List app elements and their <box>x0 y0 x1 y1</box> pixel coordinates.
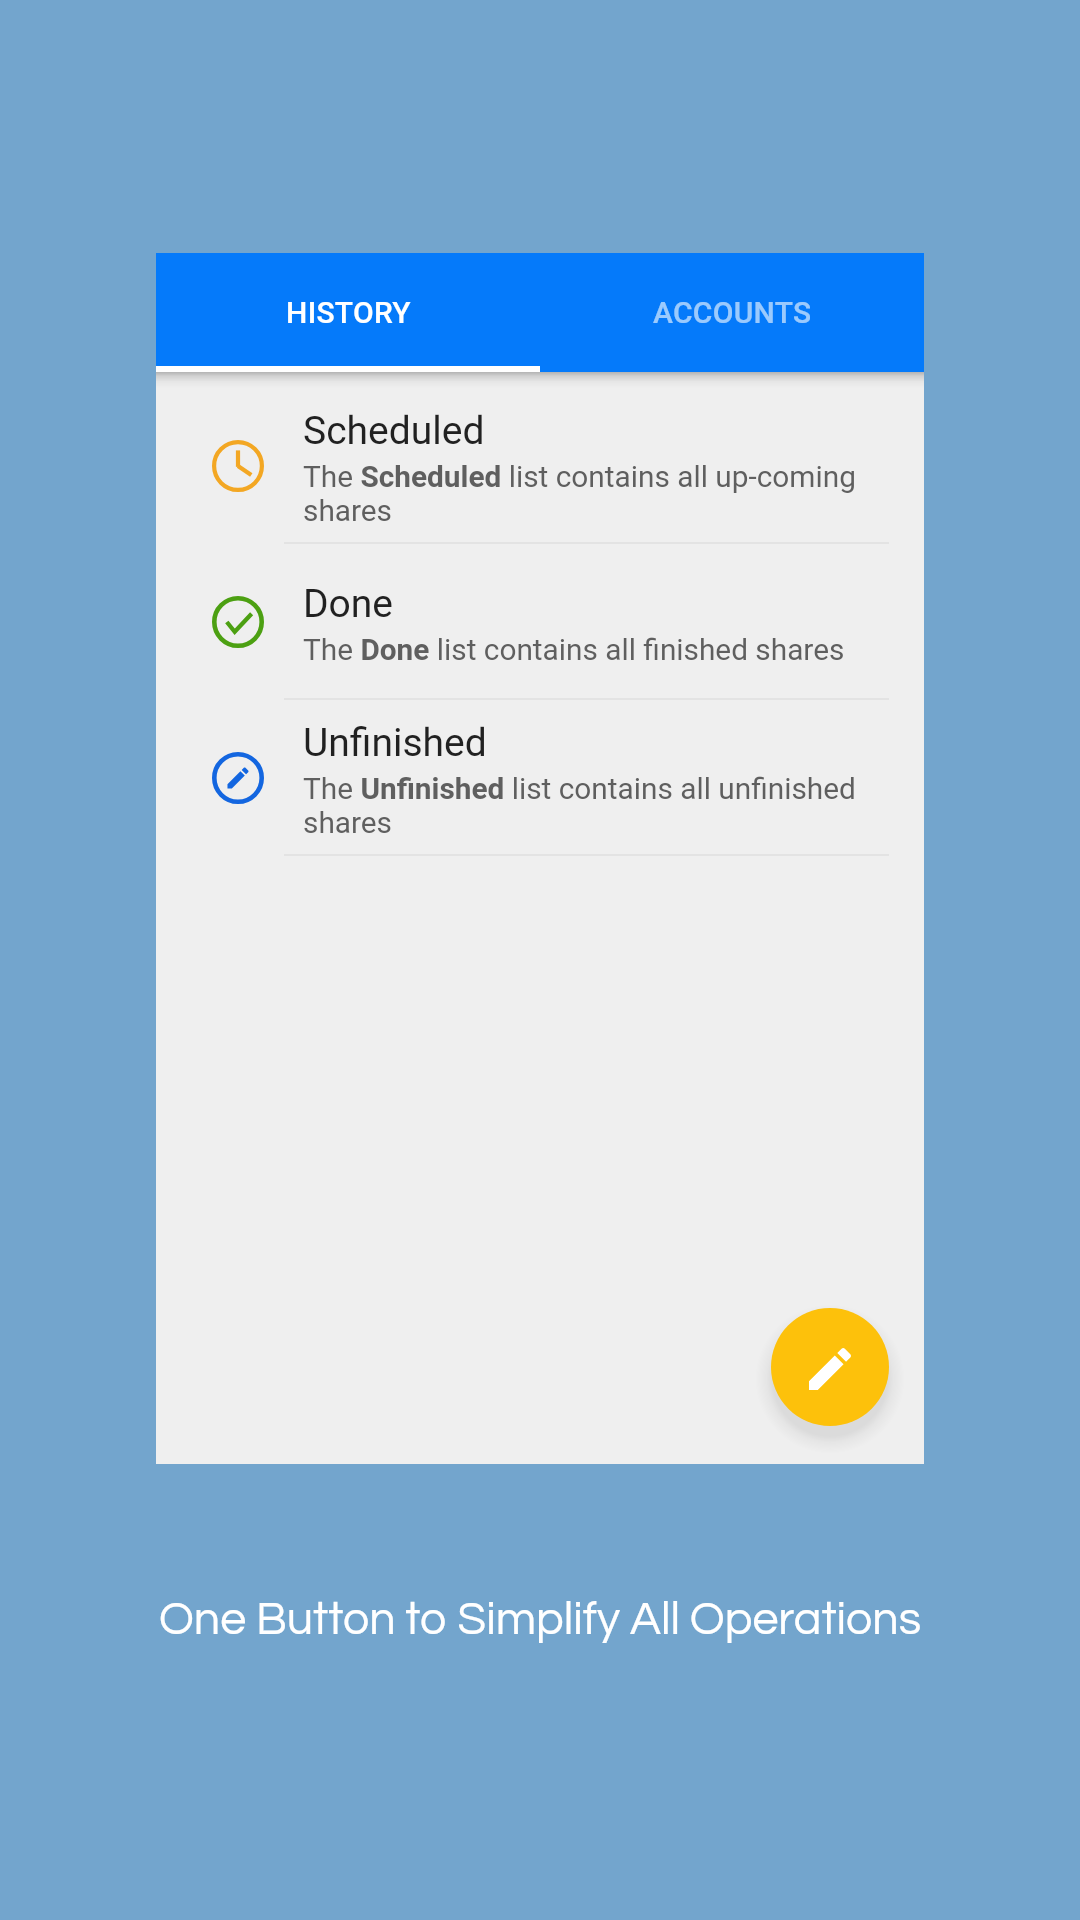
staticText: One Button to Simplify All Operations <box>0 1596 1080 1644</box>
staticText: ACCOUNTS <box>653 295 812 330</box>
staticText: The Unfinished list contains all unfinis… <box>303 771 889 840</box>
staticText: The Scheduled list contains all up-comin… <box>303 459 889 528</box>
staticText: Scheduled <box>303 408 485 454</box>
button[interactable]: Done <box>156 544 924 700</box>
button[interactable]: Create new share <box>771 1308 889 1426</box>
staticText: HISTORY <box>286 295 411 330</box>
button[interactable]: ACCOUNTS <box>540 253 924 372</box>
button[interactable]: HISTORY <box>156 253 540 372</box>
button[interactable]: Scheduled <box>156 388 924 544</box>
staticText: Unfinished <box>303 720 487 766</box>
button[interactable]: Unfinished <box>156 700 924 856</box>
staticText: Done <box>303 581 394 627</box>
staticText: The Done list contains all finished shar… <box>303 632 845 667</box>
